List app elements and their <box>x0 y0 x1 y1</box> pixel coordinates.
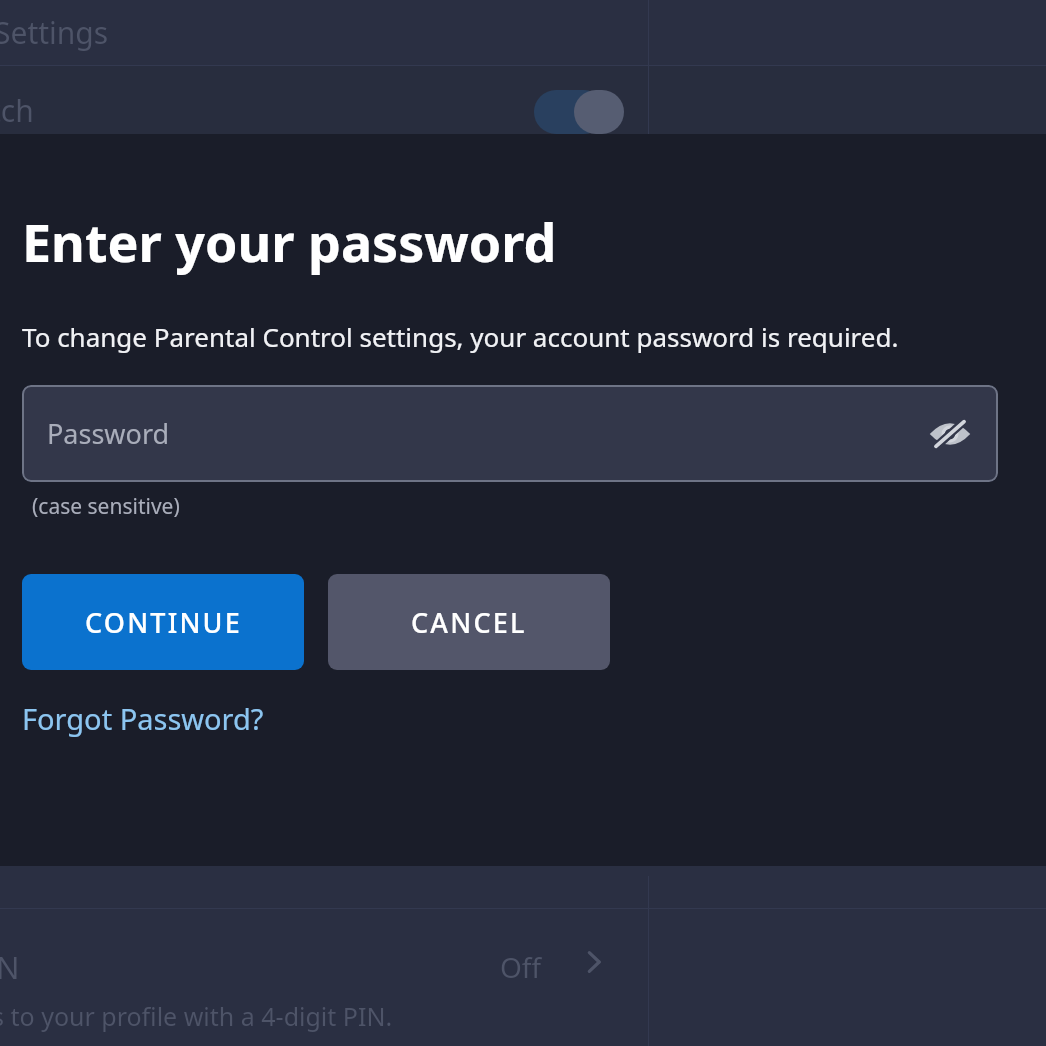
button[interactable]: Password <box>22 385 998 482</box>
staticText: Password <box>47 415 170 452</box>
staticText: Settings <box>0 12 109 53</box>
button[interactable]: CANCEL <box>328 574 610 670</box>
staticText: s to your profile with a 4-digit PIN. <box>0 999 393 1033</box>
staticText: Forgot Password? <box>22 699 264 738</box>
staticText: To change Parental Control settings, you… <box>22 319 899 354</box>
button[interactable]: Open PIN settings <box>570 938 618 986</box>
staticText: N <box>0 946 20 988</box>
button[interactable]: Show password <box>922 406 978 462</box>
staticText: CONTINUE <box>85 604 242 641</box>
staticText: Enter your password <box>22 206 557 277</box>
button[interactable]: Toggle <box>534 90 624 134</box>
staticText: Off <box>500 948 542 986</box>
button[interactable]: CONTINUE <box>22 574 304 670</box>
staticText: (case sensitive) <box>32 492 180 521</box>
staticText: CANCEL <box>411 604 527 641</box>
staticText: tch <box>0 90 34 131</box>
button[interactable]: Forgot Password? <box>22 699 264 738</box>
